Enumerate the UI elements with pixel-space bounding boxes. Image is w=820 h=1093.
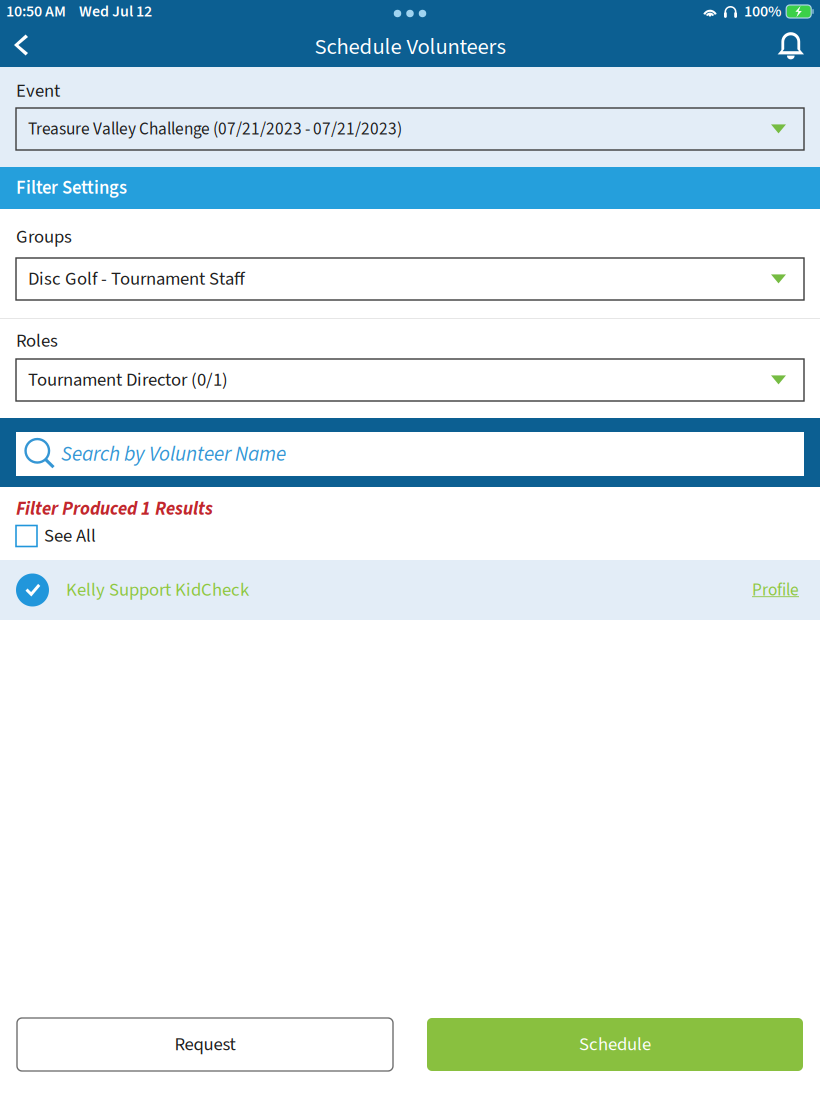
button[interactable]: See All	[16, 525, 804, 547]
staticText: Tournament Director (0/1)	[28, 367, 228, 393]
staticText: Event	[16, 78, 60, 104]
button[interactable]: Kelly Support KidCheck	[0, 560, 820, 620]
staticText: Schedule Volunteers	[314, 31, 505, 63]
staticText: Profile	[752, 578, 799, 602]
staticText: Filter Settings	[16, 175, 127, 201]
button[interactable]: Schedule	[427, 1018, 803, 1071]
button[interactable]: Notifications	[759, 23, 820, 67]
staticText: 100%	[744, 0, 781, 23]
button[interactable]: Disc Golf - Tournament Staff	[16, 258, 804, 300]
staticText: 10:50 AM	[6, 0, 66, 23]
staticText: Groups	[16, 224, 72, 250]
staticText: Roles	[16, 328, 58, 354]
staticText: Search by Volunteer Name	[61, 439, 286, 469]
staticText: Request	[174, 1031, 235, 1058]
button[interactable]: Tournament Director (0/1)	[16, 359, 804, 401]
staticText: Schedule	[579, 1031, 651, 1058]
button[interactable]: Treasure Valley Challenge (07/21/2023 - …	[16, 108, 804, 150]
button[interactable]: Request	[17, 1018, 393, 1071]
staticText: Treasure Valley Challenge (07/21/2023 - …	[28, 117, 402, 141]
staticText: Kelly Support KidCheck	[66, 577, 249, 603]
staticText: Disc Golf - Tournament Staff	[28, 266, 245, 292]
staticText: Filter Produced 1 Results	[16, 496, 213, 522]
button[interactable]: Back	[0, 23, 50, 67]
staticText: See All	[44, 523, 96, 549]
staticText: Wed Jul 12	[79, 0, 152, 23]
